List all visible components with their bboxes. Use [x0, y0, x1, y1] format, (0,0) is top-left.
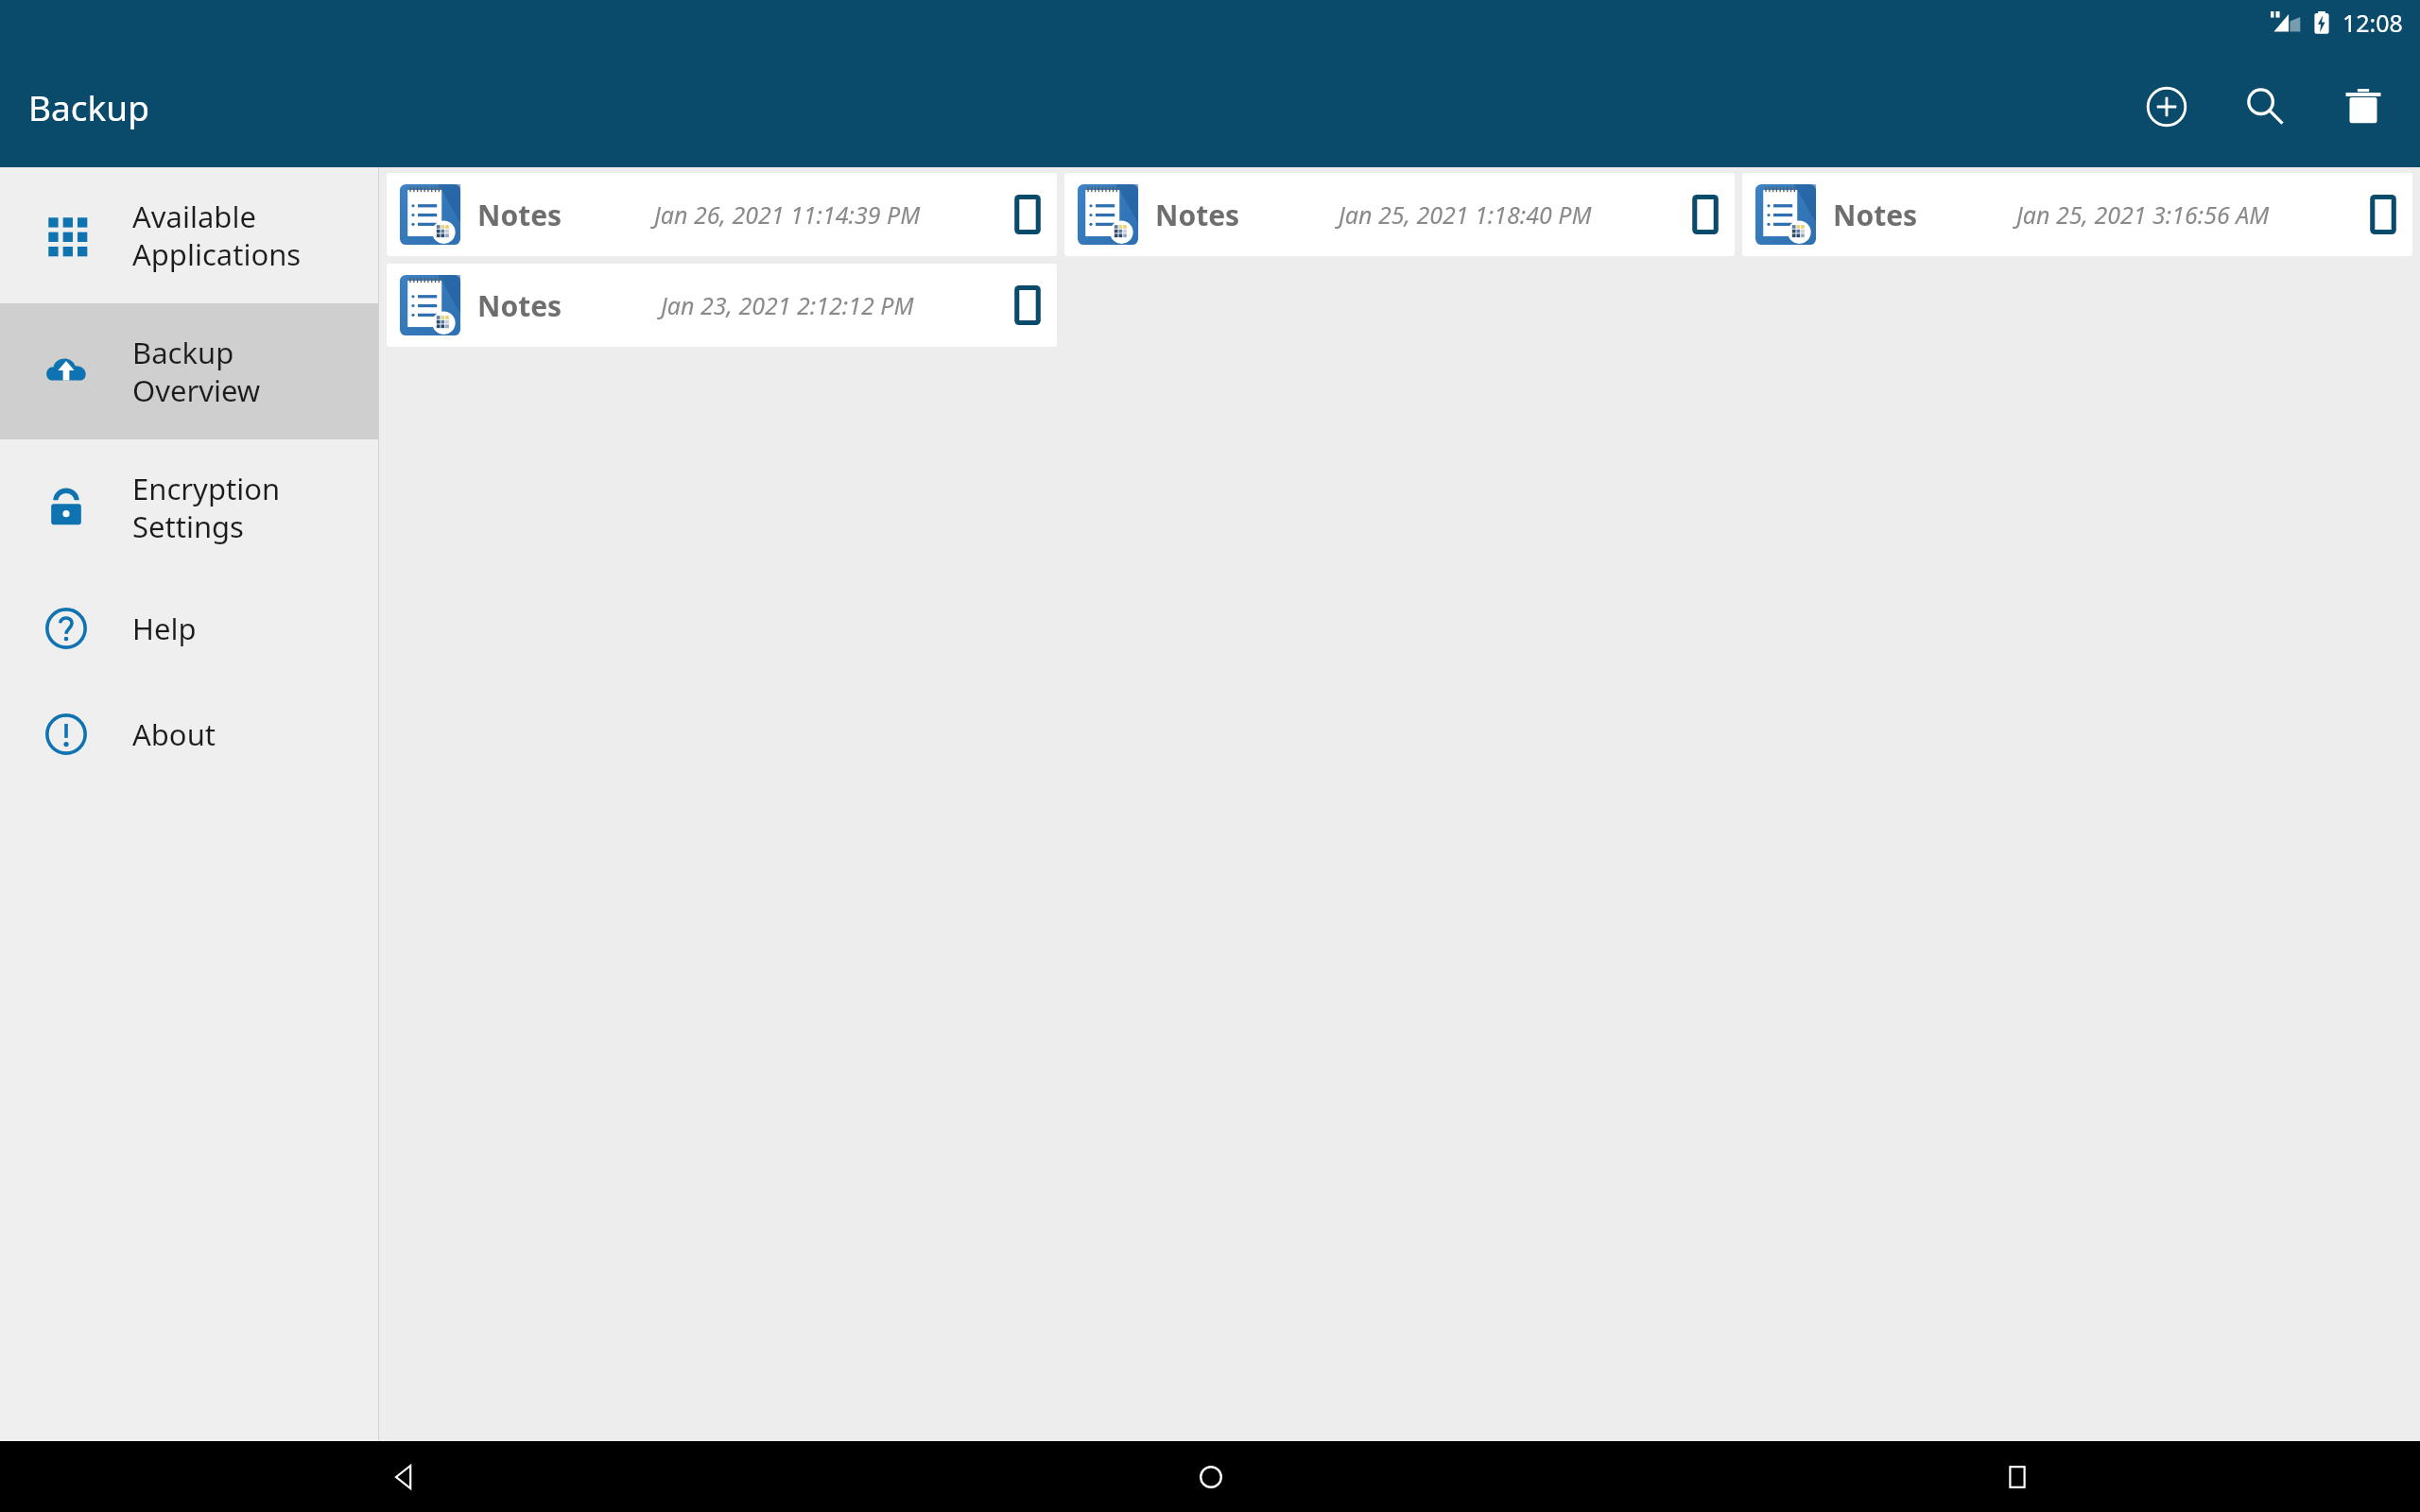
button[interactable]: Home — [807, 1441, 1614, 1512]
staticText: Jan 25, 2021 3:16:56 AM — [2016, 198, 2270, 231]
button[interactable]: Available Applications — [0, 167, 378, 303]
button[interactable]: Notes — [387, 264, 1057, 347]
button[interactable]: Notes — [1064, 173, 1735, 256]
staticText: Jan 23, 2021 2:12:12 PM — [661, 289, 914, 321]
staticText: About — [132, 714, 216, 754]
button[interactable]: Notes — [387, 173, 1057, 256]
staticText: Backup — [28, 83, 149, 130]
staticText: Jan 26, 2021 11:14:39 PM — [654, 198, 921, 231]
button[interactable]: Add backup — [2133, 73, 2201, 141]
staticText: Jan 25, 2021 1:18:40 PM — [1339, 198, 1592, 231]
button[interactable]: Delete — [2329, 73, 2397, 141]
button[interactable]: About — [0, 681, 378, 787]
staticText: 12:08 — [2342, 7, 2403, 39]
button[interactable]: Back — [0, 1441, 807, 1512]
button[interactable]: Backup Overview — [0, 303, 378, 439]
staticText: Available Applications — [132, 197, 302, 274]
staticText: Help — [132, 609, 197, 648]
staticText: Notes — [477, 286, 562, 325]
button[interactable]: Help — [0, 576, 378, 681]
button[interactable]: Encryption Settings — [0, 439, 378, 576]
staticText: Notes — [1833, 196, 1918, 234]
staticText: Notes — [1155, 196, 1240, 234]
staticText: Backup Overview — [132, 333, 261, 410]
button[interactable]: Notes — [1742, 173, 2412, 256]
button[interactable]: Search — [2231, 73, 2299, 141]
button[interactable]: Recents — [1614, 1441, 2420, 1512]
staticText: Encryption Settings — [132, 469, 281, 546]
staticText: Notes — [477, 196, 562, 234]
